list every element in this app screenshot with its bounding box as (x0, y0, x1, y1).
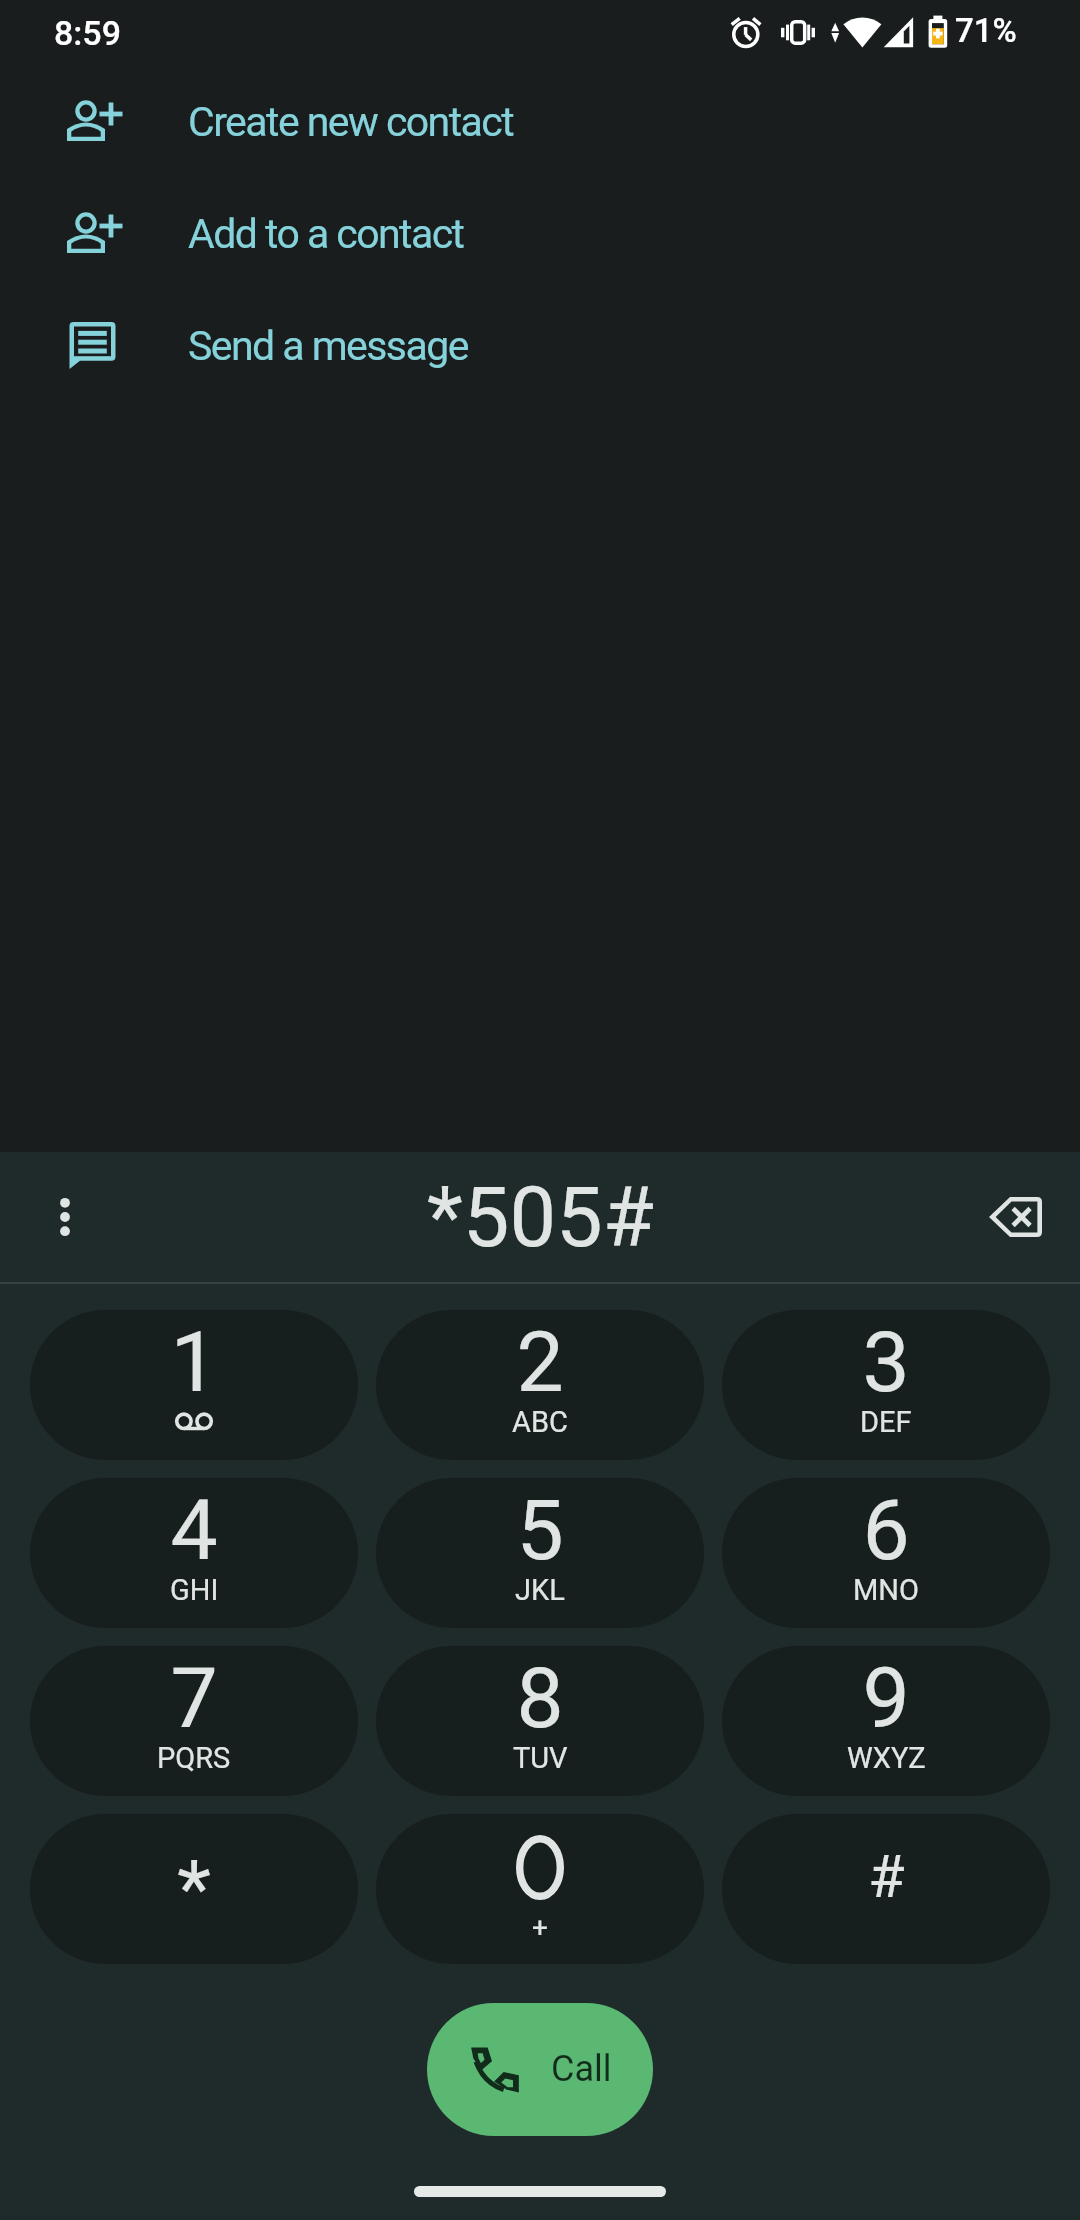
staticText: 3 (862, 1313, 910, 1411)
staticText: TUV (513, 1741, 568, 1775)
button[interactable]: * (30, 1814, 358, 1964)
button[interactable]: 4 (30, 1478, 358, 1628)
staticText: 1 (170, 1313, 218, 1411)
staticText: JKL (515, 1573, 565, 1607)
button[interactable]: Create new contact (0, 66, 1080, 178)
staticText: + (532, 1911, 548, 1944)
button[interactable]: + (376, 1814, 704, 1964)
staticText: WXYZ (847, 1741, 926, 1775)
button[interactable]: 6 (722, 1478, 1050, 1628)
staticText: 4 (170, 1481, 218, 1579)
staticText: Call (551, 2048, 612, 2090)
button[interactable]: # (722, 1814, 1050, 1964)
staticText: # (868, 1842, 905, 1911)
staticText: 2 (516, 1313, 564, 1411)
staticText: ABC (512, 1405, 568, 1439)
staticText: 5 (516, 1481, 564, 1579)
staticText: 9 (862, 1649, 910, 1747)
staticText: Add to a contact (188, 210, 464, 258)
button[interactable]: Send a message (0, 290, 1080, 402)
button[interactable]: Add to a contact (0, 178, 1080, 290)
staticText: GHI (170, 1573, 219, 1607)
staticText: 8:59 (54, 13, 121, 53)
staticText: 6 (862, 1481, 910, 1579)
button[interactable]: 2 (376, 1310, 704, 1460)
button[interactable]: 5 (376, 1478, 704, 1628)
button[interactable]: 7 (30, 1646, 358, 1796)
staticText: Send a message (188, 322, 468, 370)
staticText: MNO (853, 1573, 919, 1607)
staticText: 8 (516, 1649, 564, 1747)
button[interactable]: More options (0, 1152, 130, 1282)
staticText: 7 (170, 1649, 218, 1747)
staticText: *505# (427, 1169, 654, 1266)
staticText: Create new contact (188, 98, 514, 146)
button[interactable]: Call (427, 2003, 653, 2136)
button[interactable]: 3 (722, 1310, 1050, 1460)
button[interactable]: 9 (722, 1646, 1050, 1796)
staticText: DEF (860, 1405, 912, 1439)
staticText: 71% (955, 11, 1017, 50)
button[interactable]: Backspace (950, 1152, 1080, 1282)
staticText: PQRS (157, 1741, 231, 1775)
button[interactable]: 8 (376, 1646, 704, 1796)
staticText: * (177, 1844, 211, 1935)
button[interactable]: 1 (30, 1310, 358, 1460)
